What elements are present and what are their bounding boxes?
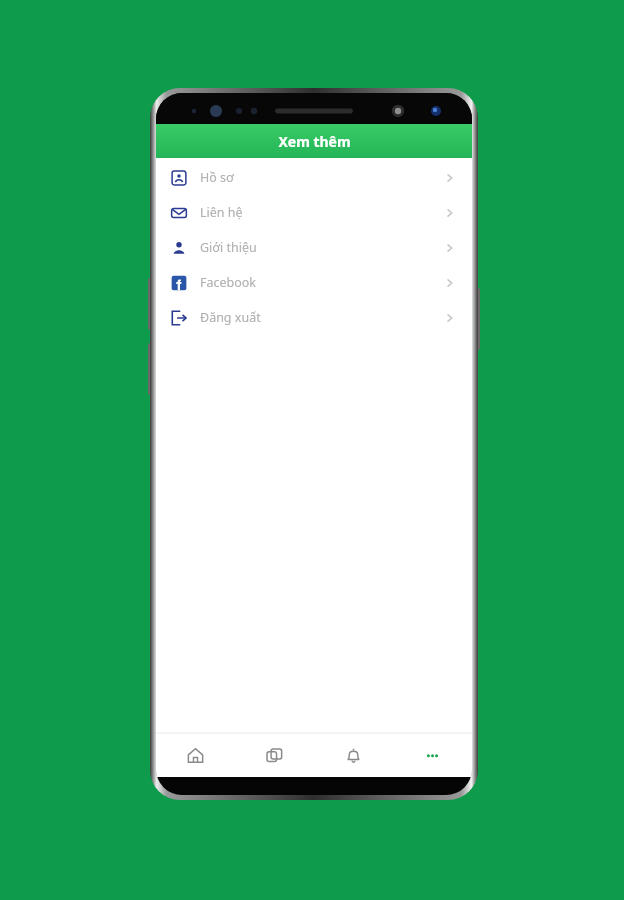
button[interactable]: Recents — [235, 733, 314, 777]
button[interactable]: Giới thiệu — [156, 230, 472, 265]
button[interactable]: Hồ sơ — [156, 160, 472, 195]
button[interactable]: Home — [156, 733, 235, 777]
button[interactable]: Notifications — [314, 733, 393, 777]
staticText: Giới thiệu — [200, 239, 257, 256]
button[interactable]: More — [393, 733, 472, 777]
staticText: Xem thêm — [278, 132, 351, 151]
button[interactable]: Facebook — [156, 265, 472, 300]
staticText: Hồ sơ — [200, 169, 234, 186]
button[interactable]: Đăng xuất — [156, 300, 472, 335]
staticText: Facebook — [200, 274, 257, 291]
button[interactable]: Liên hệ — [156, 195, 472, 230]
staticText: Đăng xuất — [200, 309, 261, 326]
staticText: Liên hệ — [200, 204, 243, 221]
